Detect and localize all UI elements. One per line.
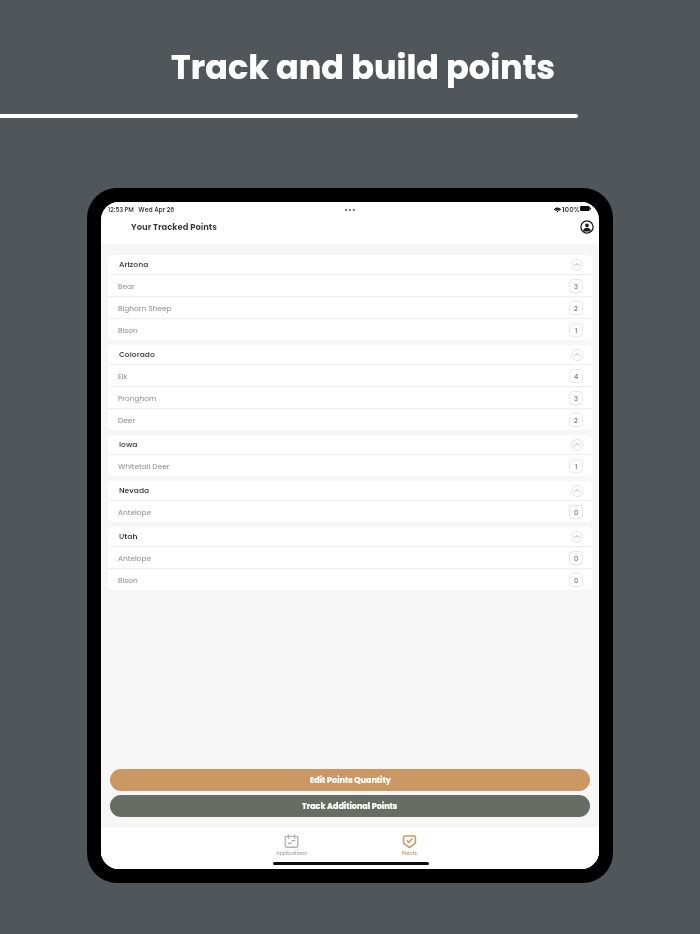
staticText: Deer — [118, 415, 136, 425]
button[interactable]: Antelope — [108, 547, 592, 568]
staticText: Antelope — [118, 553, 152, 563]
staticText: Nevada — [119, 485, 150, 496]
staticText: Pronghorn — [118, 393, 157, 403]
button[interactable]: Bear — [108, 275, 592, 296]
button[interactable]: Collapse Nevada — [571, 485, 583, 497]
staticText: Whitetail Deer — [118, 461, 170, 471]
button[interactable]: Collapse Utah — [571, 531, 583, 543]
button[interactable]: Edit Points Quantity — [110, 769, 590, 791]
button[interactable]: Whitetail Deer — [108, 455, 592, 476]
button[interactable]: Account — [580, 220, 594, 234]
staticText: 1 — [575, 462, 578, 471]
button[interactable]: Collapse Colorado — [571, 349, 583, 361]
staticText: 4 — [574, 372, 579, 381]
staticText: 100% — [562, 205, 580, 215]
button[interactable]: Track Additional Points — [110, 795, 590, 817]
button[interactable]: Elk — [108, 365, 592, 386]
button[interactable]: Bighorn Sheep — [108, 297, 592, 318]
button[interactable]: Arizona — [108, 255, 592, 274]
staticText: 0 — [574, 554, 579, 563]
staticText: Bison — [118, 575, 138, 585]
staticText: 2 — [574, 304, 578, 313]
button[interactable]: Bison — [108, 569, 592, 590]
staticText: 2 — [574, 416, 578, 425]
staticText: Track and build points — [13, 44, 700, 91]
staticText: Edit Points Quantity — [310, 775, 391, 786]
button[interactable]: Collapse Arizona — [571, 259, 583, 271]
button[interactable]: Colorado — [108, 345, 592, 364]
button[interactable]: Pronghorn — [108, 387, 592, 408]
staticText: Bear — [118, 281, 135, 291]
staticText: Iowa — [119, 439, 138, 450]
staticText: 1 — [575, 326, 578, 335]
staticText: 3 — [574, 282, 578, 291]
staticText: Elk — [118, 371, 128, 381]
button[interactable]: Collapse Iowa — [571, 439, 583, 451]
staticText: Points — [402, 850, 417, 857]
staticText: Utah — [119, 531, 138, 542]
staticText: 0 — [574, 508, 579, 517]
button[interactable]: Deer — [108, 409, 592, 430]
staticText: 0 — [574, 576, 579, 585]
staticText: Bighorn Sheep — [118, 303, 172, 313]
staticText: Colorado — [119, 349, 155, 360]
staticText: Arizona — [119, 259, 149, 270]
button[interactable]: Points — [387, 835, 431, 857]
button[interactable]: Antelope — [108, 501, 592, 522]
staticText: 12:53 PM Wed Apr 26 — [108, 205, 175, 214]
button[interactable]: Bison — [108, 319, 592, 340]
staticText: Track Additional Points — [302, 801, 398, 812]
staticText: Antelope — [118, 507, 152, 517]
button[interactable]: Utah — [108, 527, 592, 546]
staticText: 3 — [574, 394, 578, 403]
button[interactable]: Applications — [269, 835, 313, 857]
staticText: Applications — [276, 850, 307, 857]
staticText: Bison — [118, 325, 138, 335]
staticText: Your Tracked Points — [131, 221, 217, 233]
button[interactable]: Nevada — [108, 481, 592, 500]
button[interactable]: Iowa — [108, 435, 592, 454]
